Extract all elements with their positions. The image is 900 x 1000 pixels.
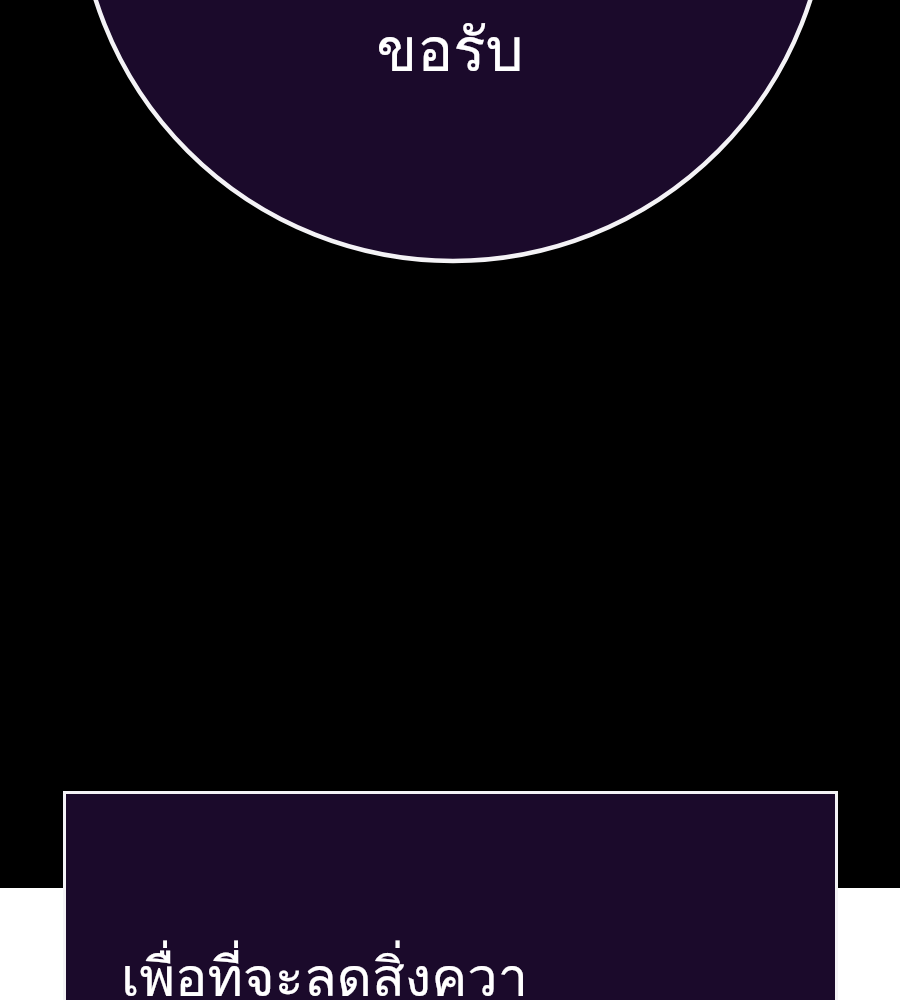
staticText: ขอรับ (376, 2, 524, 97)
button[interactable]: Speech balloon (0, 0, 900, 1000)
button[interactable]: เพื่อที่จะลดสิ่งควา (63, 791, 838, 1000)
staticText: เพื่อที่จะลดสิ่งควา (121, 934, 528, 1000)
